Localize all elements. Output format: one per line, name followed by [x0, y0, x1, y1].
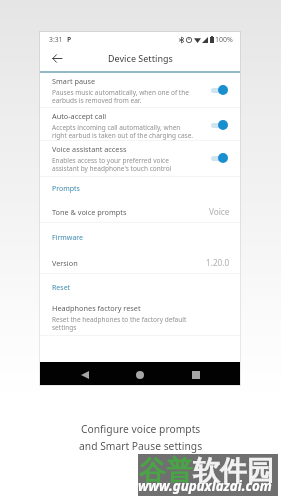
button[interactable]: Auto-accept call: [40, 107, 240, 143]
staticText: 1.20.0: [206, 257, 230, 268]
staticText: Device Settings: [108, 52, 173, 64]
staticText: Voice assistant access: [52, 144, 127, 154]
button[interactable]: Version: [40, 252, 240, 273]
staticText: 软件园: [193, 454, 274, 488]
staticText: P: [67, 35, 72, 44]
staticText: www.gupuxlazai.com: [138, 477, 272, 495]
staticText: Auto-accept call: [52, 111, 107, 121]
staticText: Firmware: [52, 233, 84, 243]
staticText: Accepts incoming call automatically, whe…: [52, 123, 194, 140]
button[interactable]: Headphones factory reset: [40, 300, 240, 332]
button[interactable]: Home: [131, 366, 149, 384]
staticText: Headphones factory reset: [52, 303, 141, 313]
staticText: Reset the headphones to the factory defa…: [52, 315, 187, 332]
staticText: Prompts: [52, 184, 80, 194]
staticText: Enables access to your preferred voice a…: [52, 156, 172, 173]
button[interactable]: Smart pause: [40, 72, 240, 108]
staticText: Version: [52, 258, 206, 268]
button[interactable]: Back: [76, 366, 94, 384]
button[interactable]: Tone & voice prompts: [40, 201, 240, 222]
staticText: Reset: [52, 283, 71, 293]
staticText: Tone & voice prompts: [52, 207, 209, 217]
staticText: Pauses music automatically, when one of …: [52, 88, 189, 105]
button[interactable]: Recent apps: [187, 366, 205, 384]
staticText: Smart pause: [52, 76, 96, 86]
button[interactable]: Voice assistant access: [40, 140, 240, 176]
staticText: and Smart Pause settings: [79, 439, 203, 453]
staticText: 100%: [215, 35, 233, 45]
staticText: 谷普: [139, 454, 193, 488]
staticText: Voice: [209, 206, 230, 217]
staticText: 3:31: [49, 35, 63, 44]
staticText: Configure voice prompts: [81, 422, 201, 436]
button[interactable]: Back: [48, 49, 66, 67]
